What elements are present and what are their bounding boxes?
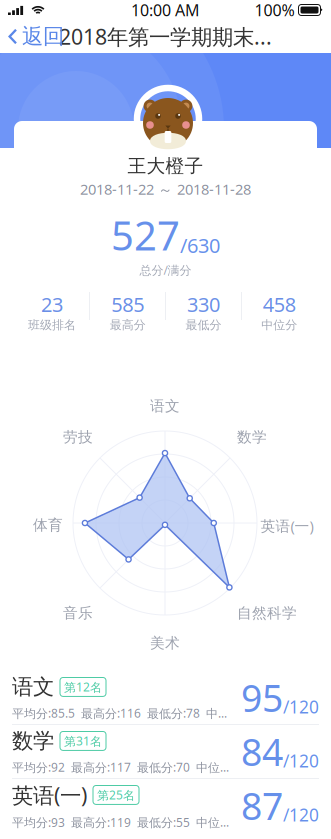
staticText: 10:00 AM [131,0,200,21]
button[interactable]: 返回 [0,20,74,53]
staticText: 体育 [33,516,63,534]
staticText: 劳技 [63,428,93,446]
staticText: 84 [241,727,283,776]
staticText: 527 [111,208,180,261]
staticText: 英语(一) [12,781,87,809]
staticText: 数学 [12,728,54,754]
staticText: /120 [283,695,319,718]
staticText: 330 [187,291,220,318]
staticText: 中位分 [261,318,297,332]
staticText: 2018-11-22 ～ 2018-11-28 [80,179,251,199]
staticText: 美术 [150,634,180,652]
staticText: 95 [241,673,283,722]
staticText: 平均分:85.5 最高分:116 最低分:78 中位分:97 [12,705,233,721]
staticText: 班级排名 [28,318,76,332]
staticText: 王大橙子 [127,154,203,177]
staticText: 平均分:92 最高分:117 最低分:70 中位分:93.5 [12,759,233,775]
staticText: 2018年第一学期期末... [59,22,272,51]
staticText: /120 [283,803,319,826]
staticText: /120 [283,749,319,772]
staticText: 语文 [150,397,180,415]
staticText: 英语(一) [260,516,313,535]
staticText: 100% [254,0,294,21]
staticText: 第31名 [64,733,102,749]
staticText: 458 [263,291,296,318]
staticText: 语文 [12,674,54,700]
button[interactable]: 英语(一) [0,779,331,832]
staticText: 最高分 [110,318,146,332]
staticText: 总分/满分 [139,262,191,278]
staticText: /630 [180,232,220,259]
staticText: 平均分:93 最高分:119 最低分:55 中位分:87 [12,814,233,830]
staticText: 自然科学 [237,604,297,622]
staticText: 第25名 [97,787,135,803]
button[interactable]: 数学 [0,725,331,778]
staticText: 23 [41,291,63,318]
staticText: 最低分 [185,318,221,332]
staticText: 返回 [22,23,64,50]
button[interactable]: 语文 [0,671,331,724]
staticText: 数学 [237,428,267,446]
staticText: 87 [241,781,283,830]
staticText: 585 [111,291,144,318]
staticText: 第12名 [64,679,102,695]
staticText: 音乐 [63,604,93,622]
